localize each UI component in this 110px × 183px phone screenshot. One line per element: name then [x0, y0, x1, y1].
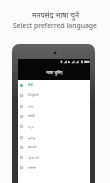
button[interactable]: ಕನ್ನಡ — [18, 121, 90, 131]
button[interactable]: हिंदी — [18, 80, 90, 90]
button[interactable]: தமிழ் — [18, 132, 90, 142]
button[interactable]: বাংলা — [18, 101, 90, 111]
staticText: मनपसंद भाषा चुने — [32, 10, 79, 20]
staticText: ਪੰਜਾਬੀ — [28, 166, 36, 169]
staticText: తెలుగు — [28, 145, 37, 149]
staticText: English — [28, 93, 39, 97]
staticText: भाषा चुनिए — [46, 70, 63, 76]
staticText: मराठी — [28, 114, 35, 118]
button[interactable]: ગુજરાતી — [18, 152, 90, 162]
button[interactable]: English — [18, 90, 90, 100]
staticText: हिंदी — [28, 83, 34, 87]
staticText: ಕನ್ನಡ — [28, 125, 34, 128]
staticText: Select preferred language — [13, 21, 97, 30]
button[interactable]: తెలుగు — [18, 142, 90, 152]
button[interactable]: मराठी — [18, 111, 90, 121]
staticText: বাংলা — [28, 105, 34, 108]
button[interactable]: ਪੰਜਾਬੀ — [18, 162, 90, 172]
staticText: தமிழ் — [28, 136, 36, 139]
staticText: ગુજરાતી — [28, 156, 39, 159]
